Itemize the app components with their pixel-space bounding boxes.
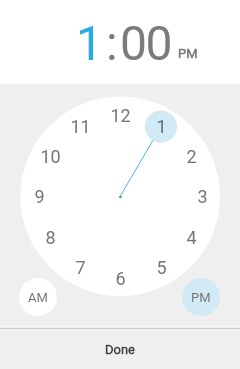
staticText: PM	[191, 290, 211, 305]
staticText: 5	[156, 257, 167, 278]
button[interactable]: Select AM	[19, 278, 57, 316]
button[interactable]: Done	[0, 330, 240, 369]
button[interactable]: 00	[120, 15, 171, 71]
button[interactable]: 11	[65, 114, 95, 138]
staticText: 2	[186, 146, 197, 167]
button[interactable]: 4	[176, 225, 206, 249]
staticText: 11	[70, 116, 91, 137]
button[interactable]: 5	[146, 255, 176, 279]
staticText: 8	[45, 227, 56, 248]
button[interactable]: 1	[76, 15, 103, 71]
button[interactable]: 7	[65, 255, 95, 279]
button[interactable]: 3	[187, 184, 217, 208]
staticText: AM	[28, 290, 48, 305]
staticText: 1	[156, 116, 167, 137]
button[interactable]: 8	[35, 225, 65, 249]
staticText: 4	[186, 227, 197, 248]
button[interactable]: Select PM	[182, 278, 220, 316]
staticText: 12	[110, 105, 131, 126]
staticText: 9	[34, 186, 45, 207]
button[interactable]: 2	[176, 144, 206, 168]
staticText: 7	[75, 257, 86, 278]
button[interactable]: 10	[35, 144, 65, 168]
button[interactable]: PM	[178, 46, 198, 61]
staticText: :	[106, 15, 118, 71]
button[interactable]: 6	[105, 266, 135, 290]
button[interactable]: 1	[146, 114, 176, 138]
button[interactable]: 12	[105, 103, 135, 127]
button[interactable]: 9	[24, 184, 54, 208]
staticText: 6	[115, 268, 126, 289]
staticText: Done	[105, 342, 136, 357]
staticText: 3	[197, 186, 208, 207]
staticText: 10	[40, 146, 61, 167]
